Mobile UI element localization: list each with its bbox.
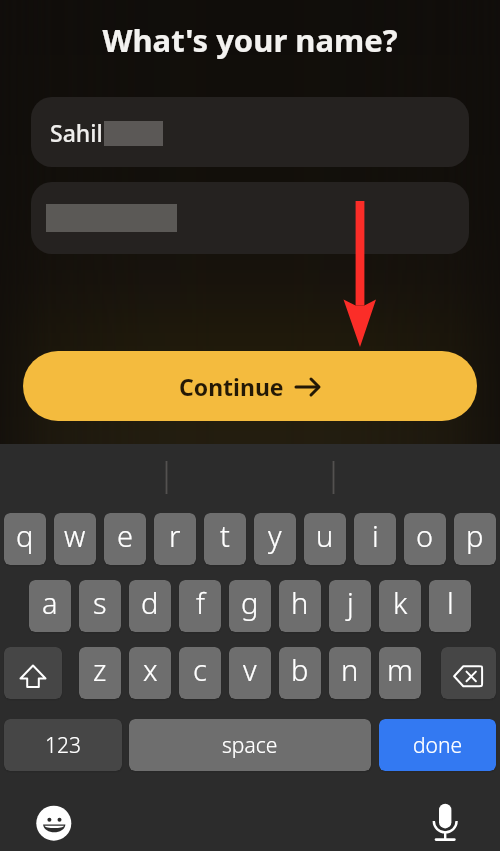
button[interactable]: r [154,513,196,565]
staticText: z [93,650,107,689]
staticText: q [16,516,34,555]
button[interactable]: k [379,580,421,632]
staticText: k [393,583,408,622]
staticText: 123 [45,731,81,760]
button[interactable]: b [279,647,321,699]
button[interactable]: Continue [23,351,477,421]
button[interactable]: q [4,513,46,565]
button[interactable]: s [79,580,121,632]
staticText: v [243,650,257,689]
staticText: e [117,516,134,555]
staticText: Continue [179,371,284,402]
staticText: a [42,583,58,622]
button[interactable]: n [329,647,371,699]
staticText: Sahil [50,117,103,148]
staticText: m [387,650,413,689]
staticText: h [291,583,309,622]
button[interactable]: e [104,513,146,565]
staticText: y [268,516,282,555]
button[interactable]: Shift [4,647,62,699]
button[interactable]: t [204,513,246,565]
button[interactable]: v [229,647,271,699]
button[interactable]: d [129,580,171,632]
staticText: r [169,516,181,555]
staticText: l [447,583,454,622]
button[interactable]: Emoji keyboard [34,803,74,843]
button[interactable]: space [129,719,371,771]
button[interactable]: j [329,580,371,632]
staticText: g [241,583,259,622]
button[interactable]: done [379,719,496,771]
button[interactable]: l [429,580,471,632]
button[interactable]: f [179,580,221,632]
staticText: o [416,516,434,555]
button[interactable]: u [304,513,346,565]
button[interactable]: i [354,513,396,565]
staticText: n [341,650,359,689]
staticText: s [93,583,107,622]
button[interactable]: a [29,580,71,632]
button[interactable]: Backspace [441,647,496,699]
button[interactable]: 123 [4,719,122,771]
button[interactable]: m [379,647,421,699]
button[interactable]: y [254,513,296,565]
button[interactable]: p [454,513,496,565]
button[interactable]: o [404,513,446,565]
staticText: i [372,516,379,555]
staticText: b [291,650,309,689]
staticText: p [466,516,484,555]
staticText: j [347,583,354,622]
staticText: f [196,583,205,622]
button[interactable]: z [79,647,121,699]
button[interactable]: w [54,513,96,565]
staticText: t [220,516,230,555]
button[interactable] [31,182,469,254]
button[interactable]: Dictation [424,800,466,844]
staticText: d [141,583,159,622]
staticText: w [64,516,86,555]
staticText: u [316,516,334,555]
button[interactable]: x [129,647,171,699]
button[interactable]: h [279,580,321,632]
button[interactable]: c [179,647,221,699]
staticText: x [143,650,158,689]
button[interactable]: Sahil [31,97,469,167]
staticText: c [193,650,207,689]
button[interactable]: g [229,580,271,632]
staticText: done [413,731,463,760]
staticText: What's your name? [0,19,500,61]
staticText: space [222,731,278,760]
